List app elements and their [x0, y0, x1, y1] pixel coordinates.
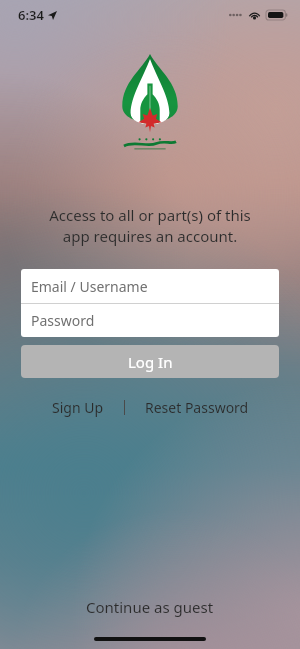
- staticText: Log In: [128, 352, 173, 372]
- staticText: Continue as guest: [86, 597, 214, 617]
- staticText: Access to all or part(s) of this app req…: [24, 205, 276, 247]
- button[interactable]: Email / Username: [21, 269, 279, 303]
- staticText: 6:34: [18, 6, 44, 24]
- other: App logo: [108, 52, 192, 157]
- button[interactable]: Reset Password: [135, 394, 259, 421]
- button[interactable]: Log In: [21, 345, 279, 378]
- staticText: Password: [31, 311, 95, 330]
- button[interactable]: Continue as guest: [66, 591, 234, 623]
- staticText: Sign Up: [52, 398, 104, 417]
- staticText: Reset Password: [145, 398, 249, 417]
- button[interactable]: Password: [21, 304, 279, 337]
- button[interactable]: Sign Up: [42, 394, 114, 421]
- staticText: Email / Username: [31, 277, 148, 296]
